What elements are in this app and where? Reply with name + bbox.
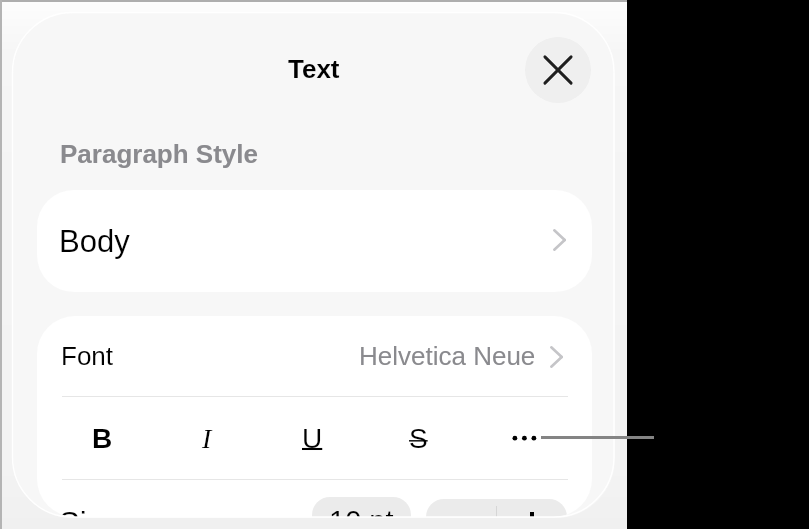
staticText: Font [61,341,114,370]
button[interactable]: Font [37,316,592,396]
button[interactable]: Decrease font size [426,499,496,517]
staticText: U [302,423,323,454]
button[interactable]: Close [525,37,591,103]
button[interactable]: S [381,409,455,467]
button[interactable]: More formatting options [506,424,546,452]
button[interactable]: 10 pt [312,497,411,517]
staticText: S [409,423,428,454]
button[interactable]: Increase font size [496,499,567,517]
staticText: Helvetica Neue [359,341,536,370]
button[interactable]: I [170,409,244,467]
button[interactable]: U [275,409,349,467]
button[interactable]: Body [37,190,592,292]
staticText: Text [288,54,340,83]
staticText: Body [59,224,130,259]
button[interactable]: B [65,409,139,467]
staticText: 10 pt [329,505,394,517]
staticText: Size [59,506,120,517]
staticText: I [202,423,212,454]
staticText: Paragraph Style [60,139,258,168]
staticText: B [92,423,113,454]
